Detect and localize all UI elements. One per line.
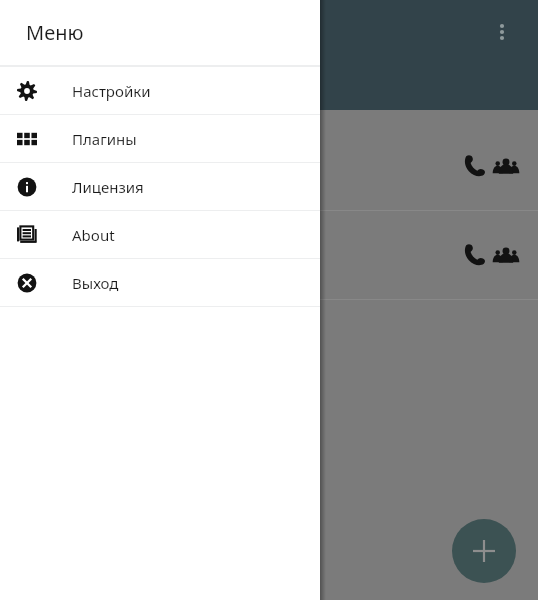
button[interactable]: Выход — [0, 259, 320, 306]
button[interactable]: More options — [478, 8, 526, 56]
button[interactable] — [0, 211, 538, 299]
button[interactable]: Add — [452, 519, 516, 583]
staticText: Лицензия — [72, 177, 144, 197]
staticText: About — [72, 225, 115, 245]
staticText: Выход — [72, 273, 119, 293]
button[interactable]: Лицензия — [0, 163, 320, 210]
button[interactable] — [0, 122, 538, 210]
staticText: Меню — [26, 19, 84, 46]
staticText: Настройки — [72, 81, 151, 101]
button[interactable]: Плагины — [0, 115, 320, 162]
button[interactable]: Настройки — [0, 67, 320, 114]
staticText: Плагины — [72, 129, 137, 149]
button[interactable]: About — [0, 211, 320, 258]
